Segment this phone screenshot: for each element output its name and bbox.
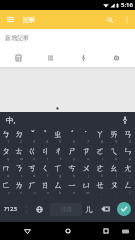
button[interactable]: Voice input — [117, 112, 133, 128]
button[interactable]: ˊ — [65, 128, 79, 145]
button[interactable]: ㄉ — [13, 128, 26, 145]
staticText: 5:16 — [121, 1, 133, 9]
staticText: ㄢ — [124, 129, 133, 140]
button[interactable]: ㄌ — [13, 179, 26, 196]
button[interactable]: Add list — [34, 47, 67, 67]
staticText: ㄩ — [82, 180, 91, 191]
staticText: ㄟ — [110, 146, 119, 157]
button[interactable]: 注音 — [50, 203, 82, 216]
button[interactable]: ㄅ — [0, 128, 13, 145]
button[interactable]: ㄐ — [39, 145, 52, 162]
staticText: 6 — [73, 139, 76, 144]
staticText: b — [59, 190, 62, 195]
button[interactable]: ㄎ — [26, 162, 39, 179]
staticText: w — [20, 156, 23, 161]
staticText: ㄔ — [54, 146, 63, 157]
staticText: ㄕ — [68, 146, 77, 157]
staticText: ˋ — [44, 129, 47, 141]
staticText: , — [101, 190, 103, 195]
button[interactable]: ㄙ — [52, 179, 65, 196]
staticText: c — [34, 190, 36, 195]
staticText: ㄐ — [41, 146, 50, 157]
staticText: ㄒ — [54, 163, 63, 174]
button[interactable]: ㄇ — [0, 162, 13, 179]
staticText: 4 — [46, 139, 49, 144]
button[interactable]: Home — [60, 223, 76, 239]
staticText: r — [47, 156, 49, 161]
button[interactable]: ㄧ — [65, 179, 79, 196]
button[interactable]: ㄢ — [121, 128, 135, 145]
button[interactable]: Recent apps — [98, 223, 114, 239]
button[interactable]: ㄗ — [79, 145, 93, 162]
button[interactable]: Add note — [2, 47, 34, 67]
staticText: ㄨ — [82, 163, 91, 174]
staticText: ㄈ — [2, 180, 11, 191]
button[interactable]: ㄔ — [52, 145, 65, 162]
button[interactable]: ㄝ — [93, 179, 107, 196]
staticText: ㄣ — [124, 146, 133, 157]
staticText: 0 — [129, 139, 132, 144]
button[interactable]: ㄓ — [52, 128, 65, 145]
button[interactable]: ˇ — [26, 128, 39, 145]
button[interactable]: ˙ — [79, 128, 93, 145]
button[interactable]: ㄕ — [65, 145, 79, 162]
button[interactable]: ㄍ — [26, 145, 39, 162]
button[interactable]: ㄩ — [79, 179, 93, 196]
staticText: ㄦ — [85, 204, 94, 215]
button[interactable]: ㄊ — [13, 145, 26, 162]
button[interactable]: ㄛ — [93, 145, 107, 162]
staticText: e — [33, 156, 36, 161]
button[interactable]: ?123 — [1, 196, 20, 222]
button[interactable]: Delete — [99, 196, 112, 222]
staticText: 3 — [33, 139, 36, 144]
button[interactable]: Open navigation drawer — [0, 10, 21, 29]
staticText: ?123 — [4, 205, 17, 213]
button[interactable]: ㄚ — [93, 128, 107, 145]
staticText: a — [7, 173, 10, 178]
staticText: ㄙ — [54, 180, 63, 191]
button[interactable]: ˋ — [39, 128, 52, 145]
button[interactable]: ㄜ — [93, 162, 107, 179]
button[interactable]: Back — [19, 223, 35, 239]
staticText: g — [59, 173, 62, 178]
button[interactable]: ㄣ — [121, 145, 135, 162]
staticText: ; — [26, 209, 28, 214]
button[interactable]: Add photo — [100, 47, 133, 67]
button[interactable]: ㄡ — [107, 179, 121, 196]
staticText: ㄤ — [124, 163, 133, 174]
button[interactable]: Input language — [6, 112, 22, 128]
button[interactable]: Keyboard settings — [118, 224, 132, 238]
staticText: ㄧ — [68, 180, 77, 191]
button[interactable]: ㄒ — [52, 162, 65, 179]
button[interactable]: ㄦ — [83, 196, 95, 222]
button[interactable]: ㄤ — [121, 162, 135, 179]
button[interactable]: Enter — [114, 196, 134, 222]
button[interactable]: ㄖ — [39, 179, 52, 196]
button[interactable]: Search — [101, 10, 118, 29]
button[interactable]: ㄨ — [79, 162, 93, 179]
button[interactable]: ㄟ — [107, 145, 121, 162]
button[interactable]: Change language — [33, 196, 45, 222]
staticText: l — [116, 173, 117, 178]
staticText: ㄌ — [15, 180, 24, 191]
button[interactable]: ㄑ — [39, 162, 52, 179]
staticText: ㄑ — [41, 163, 50, 174]
button[interactable]: ㄈ — [0, 179, 13, 196]
staticText: o — [115, 156, 118, 161]
button[interactable]: ㄞ — [107, 128, 121, 145]
button[interactable]: ㄏ — [26, 179, 39, 196]
staticText: ㄉ — [15, 129, 24, 140]
button[interactable]: ㄘ — [65, 162, 79, 179]
staticText: p — [129, 156, 132, 161]
button[interactable]: ㄆ — [0, 145, 13, 162]
staticText: j — [88, 173, 89, 178]
button[interactable]: ㄋ — [13, 162, 26, 179]
staticText: 中, — [6, 115, 16, 125]
button[interactable]: More options — [118, 10, 135, 29]
staticText: 記事 — [23, 16, 35, 24]
button[interactable]: Voice note — [67, 47, 100, 67]
button[interactable]: ㄠ — [107, 162, 121, 179]
staticText: ㄞ — [110, 129, 119, 140]
button[interactable]: ㄥ — [121, 179, 135, 196]
